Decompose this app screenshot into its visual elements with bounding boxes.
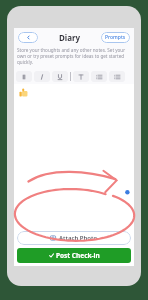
staticText: Attach Photo: [59, 234, 98, 242]
button[interactable]: Underline: [52, 71, 68, 82]
staticText: Prompts: [105, 34, 126, 41]
button[interactable]: [14, 84, 134, 231]
button[interactable]: Back: [18, 32, 38, 43]
button[interactable]: Text style: [73, 71, 89, 82]
button[interactable]: Post Check-in: [17, 248, 131, 263]
button[interactable]: Bulleted list: [91, 71, 107, 82]
button[interactable]: Italic: [34, 71, 50, 82]
staticText: Store your thoughts and any other notes.…: [17, 47, 131, 65]
staticText: Diary: [59, 32, 81, 43]
button[interactable]: Numbered list: [109, 71, 125, 82]
button[interactable]: Attach Photo: [17, 231, 131, 245]
button[interactable]: Prompts: [101, 32, 130, 43]
staticText: Post Check-in: [56, 251, 100, 260]
button[interactable]: Bold: [16, 71, 32, 82]
